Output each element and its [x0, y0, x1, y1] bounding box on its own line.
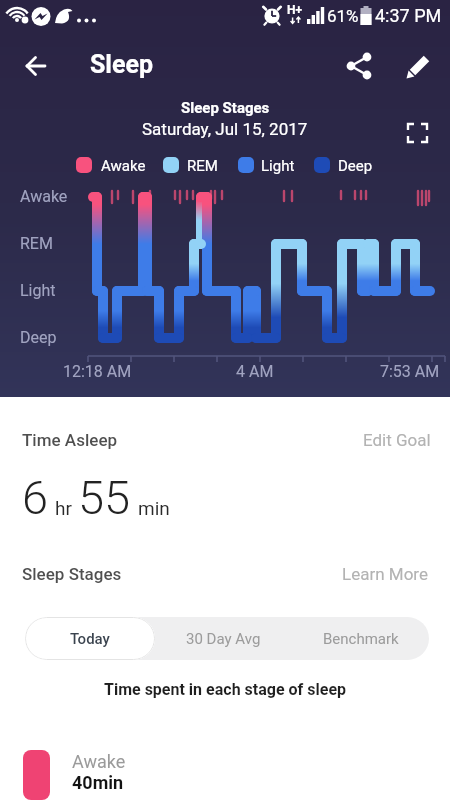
staticText: Edit Goal — [363, 430, 431, 450]
staticText: Deep — [338, 157, 373, 175]
staticText: Awake — [20, 187, 68, 206]
staticText: Light — [261, 157, 295, 175]
staticText: Awake — [101, 157, 146, 175]
staticText: REM — [20, 234, 53, 253]
button[interactable] — [398, 48, 438, 88]
button[interactable]: Learn More — [342, 564, 428, 584]
staticText: Learn More — [342, 564, 428, 584]
staticText: H+ — [287, 3, 303, 17]
staticText: 30 Day Avg — [186, 630, 261, 648]
staticText: Time spent in each stage of sleep — [104, 680, 347, 699]
button[interactable] — [400, 118, 434, 152]
staticText: 4 AM — [236, 362, 274, 381]
button[interactable]: Benchmark — [292, 617, 429, 660]
staticText: 6 — [22, 470, 49, 525]
button[interactable]: Edit Goal — [363, 430, 431, 450]
button[interactable]: 30 Day Avg — [155, 617, 292, 660]
button[interactable]: Today — [25, 617, 155, 660]
staticText: Today — [70, 630, 110, 648]
staticText: Sleep — [90, 50, 154, 79]
staticText: REM — [187, 157, 218, 175]
staticText: Benchmark — [323, 630, 399, 648]
button[interactable]: Awake — [0, 744, 450, 800]
staticText: Light — [20, 281, 56, 300]
staticText: Sleep Stages — [22, 564, 122, 584]
staticText: Awake — [72, 751, 126, 772]
staticText: min — [138, 497, 170, 519]
staticText: Time Asleep — [22, 430, 118, 450]
staticText: 7:53 AM — [380, 362, 440, 381]
staticText: 12:18 AM — [63, 362, 132, 381]
staticText: 40min — [72, 772, 124, 793]
button[interactable] — [338, 48, 378, 88]
staticText: Deep — [20, 328, 57, 347]
staticText: Saturday, Jul 15, 2017 — [142, 119, 308, 139]
button[interactable] — [16, 48, 56, 88]
staticText: hr — [55, 497, 72, 519]
staticText: Sleep Stages — [181, 99, 270, 117]
staticText: 55 — [78, 470, 131, 525]
staticText: 61% — [327, 6, 359, 26]
staticText: 4:37 PM — [375, 5, 442, 26]
